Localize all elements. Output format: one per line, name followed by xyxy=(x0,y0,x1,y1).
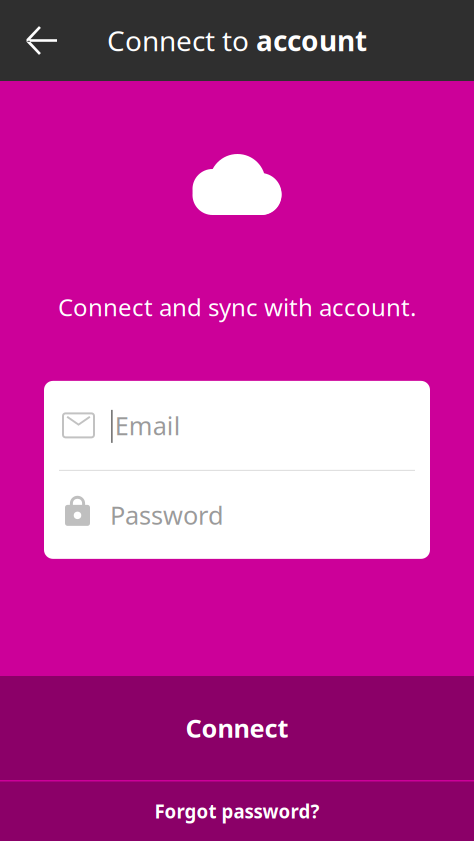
button[interactable]: Forgot password? xyxy=(0,781,474,841)
staticText: Forgot password? xyxy=(154,799,319,824)
button[interactable]: Back xyxy=(0,0,82,81)
staticText: Connect to xyxy=(107,22,256,59)
staticText: Connect and sync with account. xyxy=(58,291,416,323)
button[interactable]: Password xyxy=(44,471,430,559)
button[interactable]: Connect xyxy=(0,676,474,780)
staticText: Password xyxy=(110,498,224,532)
button[interactable]: Email xyxy=(44,381,430,470)
staticText: account xyxy=(256,22,367,59)
staticText: Email xyxy=(115,409,181,442)
staticText: Connect xyxy=(185,711,288,745)
